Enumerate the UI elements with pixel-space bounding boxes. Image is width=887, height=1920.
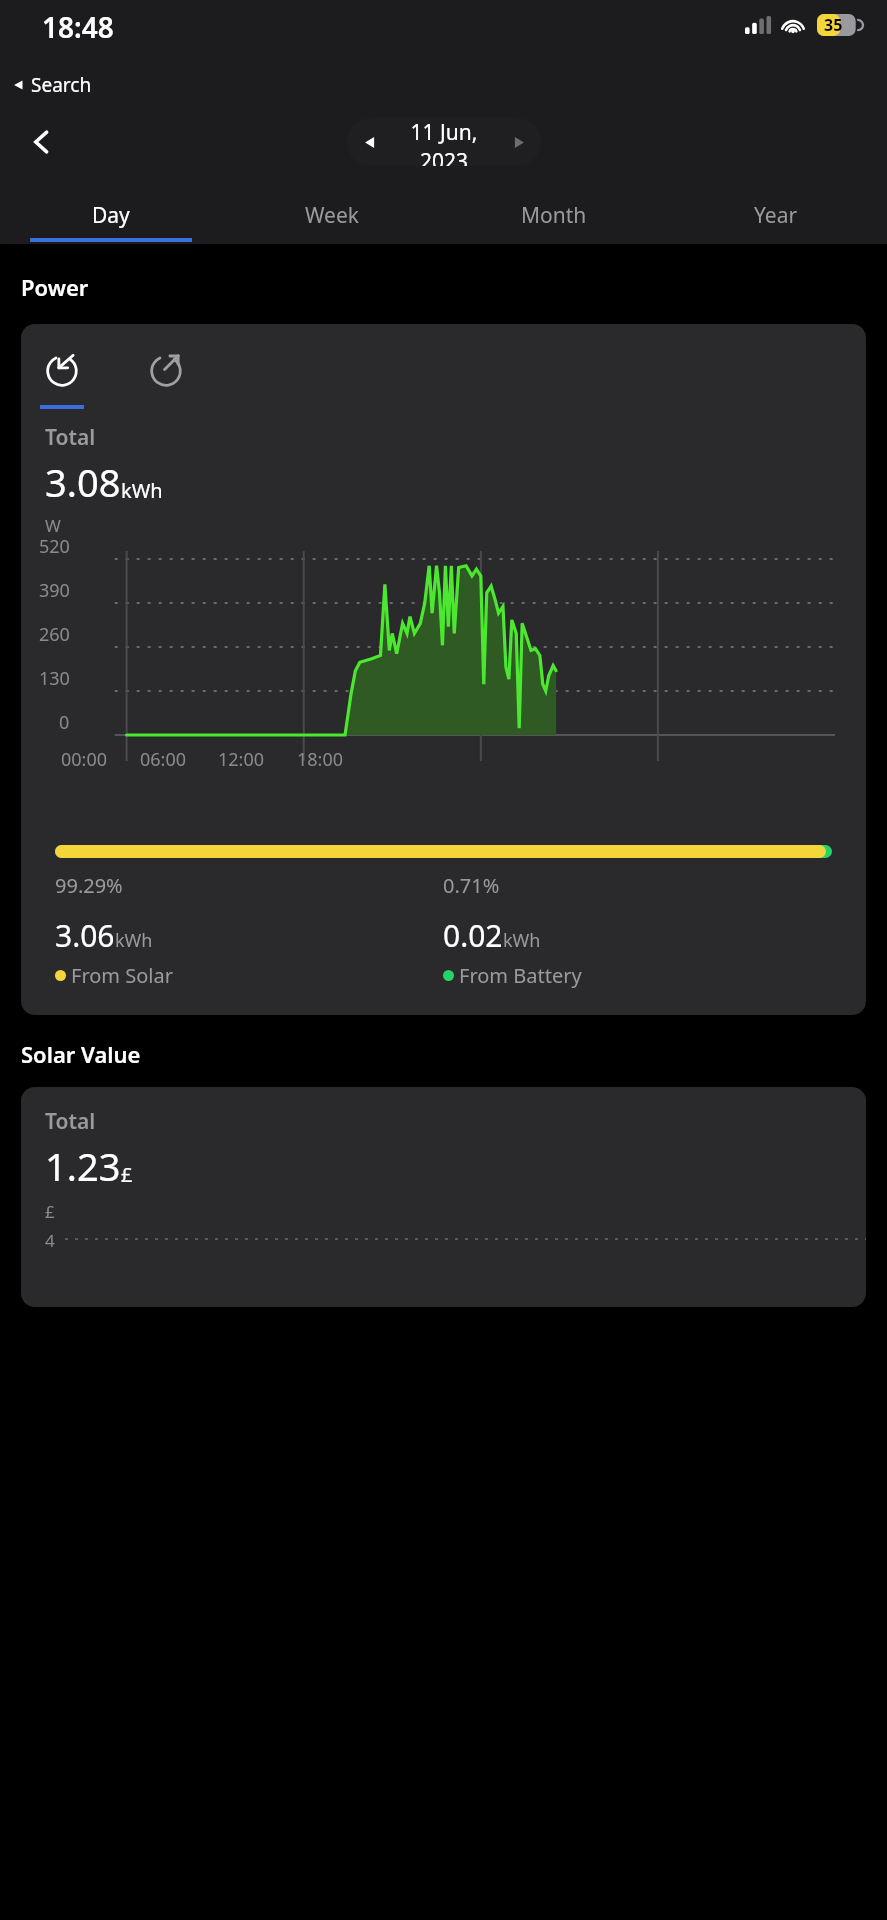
staticText: Total: [45, 1107, 96, 1136]
button[interactable]: Next day: [497, 118, 541, 166]
staticText: 520: [39, 534, 70, 559]
staticText: 12:00: [218, 747, 265, 772]
staticText: 99.29%: [55, 872, 443, 899]
staticText: Solar Value: [21, 1039, 141, 1069]
button[interactable]: Month: [443, 192, 665, 238]
staticText: Year: [754, 201, 798, 230]
staticText: Month: [521, 201, 587, 230]
staticText: 260: [39, 622, 70, 647]
button[interactable]: Year: [665, 192, 887, 238]
button[interactable]: Week: [221, 192, 443, 238]
staticText: 0.02: [443, 915, 503, 956]
staticText: From Battery: [459, 962, 582, 989]
staticText: Search: [31, 72, 92, 98]
button[interactable]: Import: [35, 344, 89, 398]
staticText: Power: [21, 272, 89, 302]
staticText: Week: [305, 201, 360, 230]
staticText: kWh: [503, 928, 541, 953]
staticText: 130: [39, 666, 70, 691]
button[interactable]: Previous day: [347, 118, 391, 166]
staticText: 4: [45, 1229, 55, 1252]
staticText: 18:48: [42, 8, 114, 46]
staticText: W: [45, 514, 61, 537]
staticText: £: [121, 1161, 133, 1188]
staticText: 3.06: [55, 915, 115, 956]
staticText: 00:00: [61, 747, 108, 772]
button[interactable]: Previous day: [347, 118, 541, 166]
staticText: 390: [39, 578, 70, 603]
staticText: 0.71%: [443, 872, 832, 899]
staticText: 1.23: [45, 1140, 121, 1192]
staticText: Day: [92, 201, 130, 230]
staticText: 18:00: [297, 747, 344, 772]
staticText: kWh: [115, 928, 153, 953]
staticText: From Solar: [71, 962, 173, 989]
staticText: 06:00: [140, 747, 187, 772]
staticText: 0: [59, 710, 70, 735]
staticText: Total: [45, 423, 96, 452]
button[interactable]: Back: [18, 118, 66, 166]
staticText: 35: [824, 14, 843, 36]
staticText: £: [45, 1200, 55, 1223]
button[interactable]: Day: [0, 192, 221, 238]
button[interactable]: Export: [139, 344, 193, 398]
staticText: kWh: [121, 477, 163, 504]
staticText: 11 Jun, 2023: [391, 118, 497, 166]
staticText: 3.08: [45, 456, 121, 508]
